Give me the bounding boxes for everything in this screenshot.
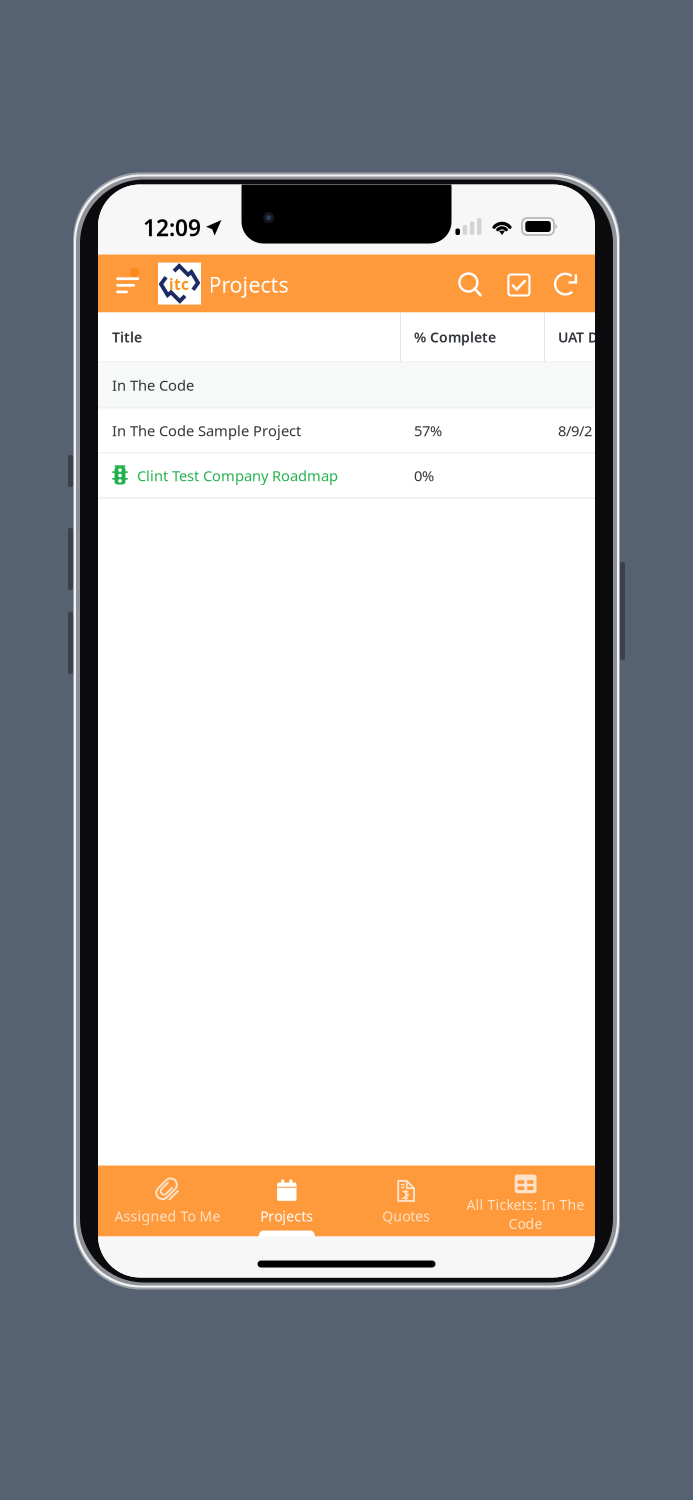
staticText: Projects <box>260 1206 313 1226</box>
staticText: 12:09 <box>143 212 201 243</box>
button[interactable]: Refresh <box>544 254 588 312</box>
button[interactable]: Projects <box>227 1165 346 1236</box>
staticText: Quotes <box>382 1206 430 1226</box>
staticText: Code <box>509 1214 543 1233</box>
staticText: In The Code Sample Project <box>112 420 301 440</box>
staticText: Clint Test Company Roadmap <box>137 465 338 485</box>
staticText: All Tickets: In The <box>467 1195 585 1214</box>
button[interactable]: Assigned To Me <box>108 1165 227 1236</box>
staticText: Assigned To Me <box>114 1206 220 1226</box>
staticText: Projects <box>208 270 288 299</box>
button[interactable]: Clint Test Company Roadmap <box>98 453 595 497</box>
button[interactable]: Select items <box>497 254 541 312</box>
staticText: 57% <box>414 420 442 440</box>
staticText: itc <box>169 274 189 294</box>
button[interactable]: Search <box>449 254 493 312</box>
staticText: In The Code <box>112 375 194 395</box>
button[interactable]: In The Code Sample Project <box>98 408 595 452</box>
staticText: 8/9/2 <box>558 420 592 440</box>
button[interactable]: All Tickets: In The <box>466 1165 585 1236</box>
button[interactable]: Menu <box>108 254 152 312</box>
staticText: % Complete <box>414 327 496 347</box>
staticText: UAT D <box>558 327 598 347</box>
staticText: Title <box>112 327 142 347</box>
button[interactable]: Quotes <box>346 1165 466 1236</box>
staticText: 0% <box>414 465 434 485</box>
